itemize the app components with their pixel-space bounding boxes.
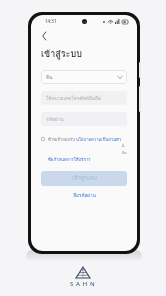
button[interactable]: ข้าพเจ้ายอมรับ [41,136,127,163]
button[interactable]: รหัสผ่าน [41,112,127,126]
staticText: รหัสผ่าน [46,115,64,123]
staticText: 14:31 [45,18,57,24]
staticText: เข้าสู่ระบบ [72,174,97,183]
button[interactable]: Back [37,29,51,43]
button[interactable]: เข้าสู่ระบบ [41,171,127,186]
staticText: ข้าพเจ้ายอมรับ [48,136,76,143]
button[interactable]: จีน [41,70,127,84]
staticText: เข้าสู่ระบบ [41,47,82,61]
button[interactable]: ข้อกำหนดการให้บริการ [48,156,91,163]
button[interactable]: ใช้หมายเลขโทรศัพท์มือถือ [41,91,127,105]
staticText: จีน [46,73,53,81]
staticText: ใช้หมายเลขโทรศัพท์มือถือ [46,94,101,102]
staticText: S A H N [70,280,96,288]
staticText: และ [122,136,127,156]
staticText: ลืมรหัสผ่าน [73,192,96,199]
button[interactable]: ลืมรหัสผ่าน [41,192,127,199]
button[interactable]: นโยบายความเป็นส่วนตัว [76,136,122,143]
